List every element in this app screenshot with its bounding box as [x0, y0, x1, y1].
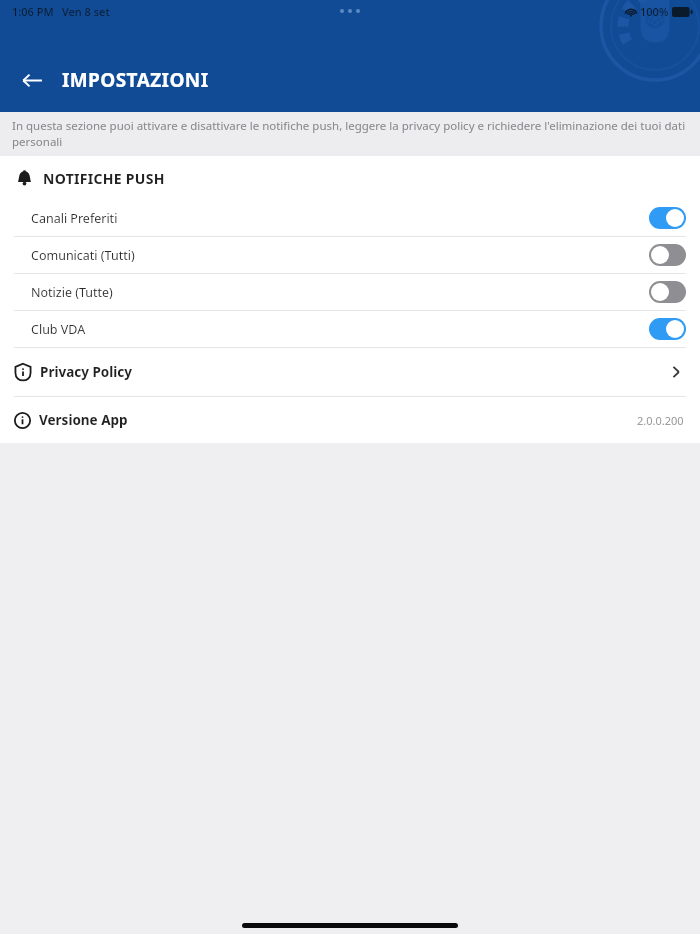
button[interactable]: Notizie (Tutte) — [0, 274, 700, 310]
staticText: Privacy Policy — [40, 363, 668, 381]
staticText: IMPOSTAZIONI — [62, 67, 209, 93]
button[interactable]: Off — [649, 281, 686, 303]
staticText: 100% — [640, 4, 669, 19]
button[interactable]: Privacy Policy — [0, 348, 700, 396]
button[interactable]: Canali Preferiti — [0, 200, 700, 236]
staticText: 2.0.0.200 — [637, 413, 684, 428]
staticText: Club VDA — [31, 321, 649, 338]
staticText: Versione App — [39, 411, 637, 429]
button[interactable]: Club VDA — [0, 311, 700, 347]
button[interactable]: On — [649, 207, 686, 229]
button[interactable]: Comunicati (Tutti) — [0, 237, 700, 273]
button[interactable]: Off — [649, 244, 686, 266]
staticText: Ven 8 set — [62, 4, 110, 19]
staticText: In questa sezione puoi attivare e disatt… — [12, 118, 688, 150]
staticText: Canali Preferiti — [31, 210, 649, 227]
staticText: Notizie (Tutte) — [31, 284, 649, 301]
button[interactable]: On — [649, 318, 686, 340]
staticText: Comunicati (Tutti) — [31, 247, 649, 264]
button[interactable]: Back — [14, 62, 50, 98]
button[interactable]: Versione App — [0, 397, 700, 443]
staticText: NOTIFICHE PUSH — [43, 169, 165, 188]
staticText: 1:06 PM — [12, 4, 54, 19]
